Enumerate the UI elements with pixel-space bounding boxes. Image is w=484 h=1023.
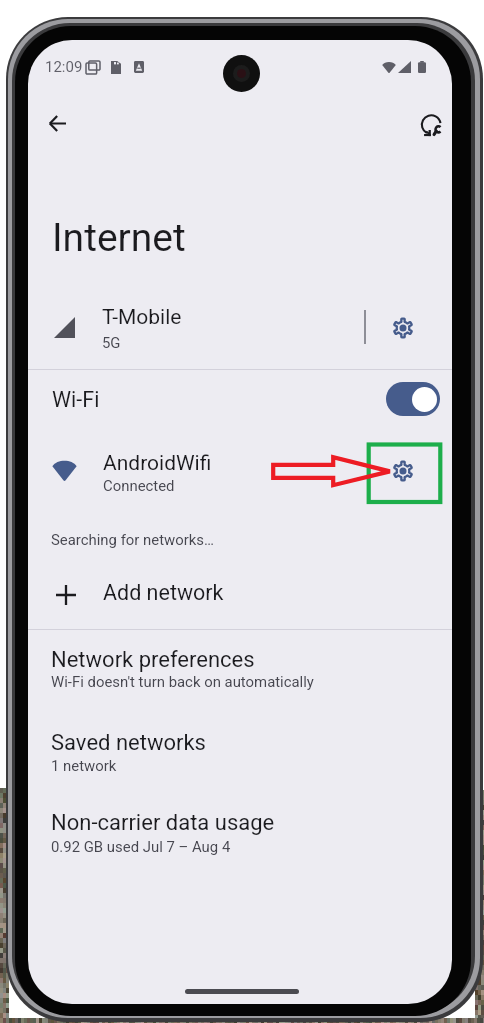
- button[interactable]: [28, 432, 452, 510]
- staticText: 5G: [102, 334, 121, 351]
- button[interactable]: [28, 288, 452, 369]
- staticText: Add network: [103, 580, 224, 605]
- button[interactable]: Carrier settings: [380, 305, 425, 350]
- staticText: 12:09: [45, 58, 83, 76]
- staticText: Connected: [103, 477, 175, 494]
- staticText: Network preferences: [51, 647, 255, 673]
- button[interactable]: [28, 635, 452, 707]
- staticText: Non-carrier data usage: [51, 810, 275, 836]
- button[interactable]: Network details: [380, 448, 425, 493]
- staticText: AndroidWifi: [103, 451, 212, 476]
- staticText: Saved networks: [51, 730, 206, 756]
- staticText: Wi-Fi: [52, 387, 100, 412]
- staticText: 1 network: [51, 757, 117, 774]
- button[interactable]: Wi-Fi toggle: [386, 382, 440, 416]
- button[interactable]: Reset settings: [409, 103, 452, 148]
- staticText: 0.92 GB used Jul 7 – Aug 4: [51, 838, 231, 855]
- button[interactable]: [28, 722, 452, 794]
- staticText: T-Mobile: [102, 305, 182, 330]
- staticText: Searching for networks…: [51, 531, 214, 548]
- staticText: Wi-Fi doesn't turn back on automatically: [51, 673, 314, 690]
- button[interactable]: Back: [35, 101, 80, 146]
- button[interactable]: [28, 568, 452, 622]
- button[interactable]: [28, 370, 452, 428]
- staticText: Internet: [52, 215, 186, 261]
- button[interactable]: [28, 802, 452, 874]
